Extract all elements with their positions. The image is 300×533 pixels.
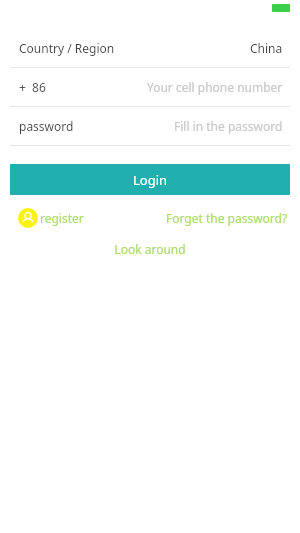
- staticText: register: [40, 210, 84, 226]
- button[interactable]: Forget the password?: [166, 208, 288, 228]
- button[interactable]: password: [0, 107, 300, 145]
- staticText: Look around: [114, 241, 186, 257]
- staticText: Login: [133, 171, 168, 189]
- staticText: Country / Region: [19, 40, 115, 56]
- button[interactable]: + 86: [0, 68, 300, 106]
- button[interactable]: register: [18, 208, 84, 228]
- button[interactable]: Look around: [108, 239, 192, 259]
- staticText: + 86: [19, 79, 46, 95]
- button[interactable]: Country / Region: [0, 29, 300, 67]
- staticText: Your cell phone number: [147, 79, 283, 95]
- staticText: Forget the password?: [166, 210, 288, 226]
- staticText: China: [250, 40, 283, 56]
- staticText: Fill in the password: [174, 118, 283, 134]
- staticText: password: [19, 118, 74, 134]
- button[interactable]: Login: [10, 164, 290, 195]
